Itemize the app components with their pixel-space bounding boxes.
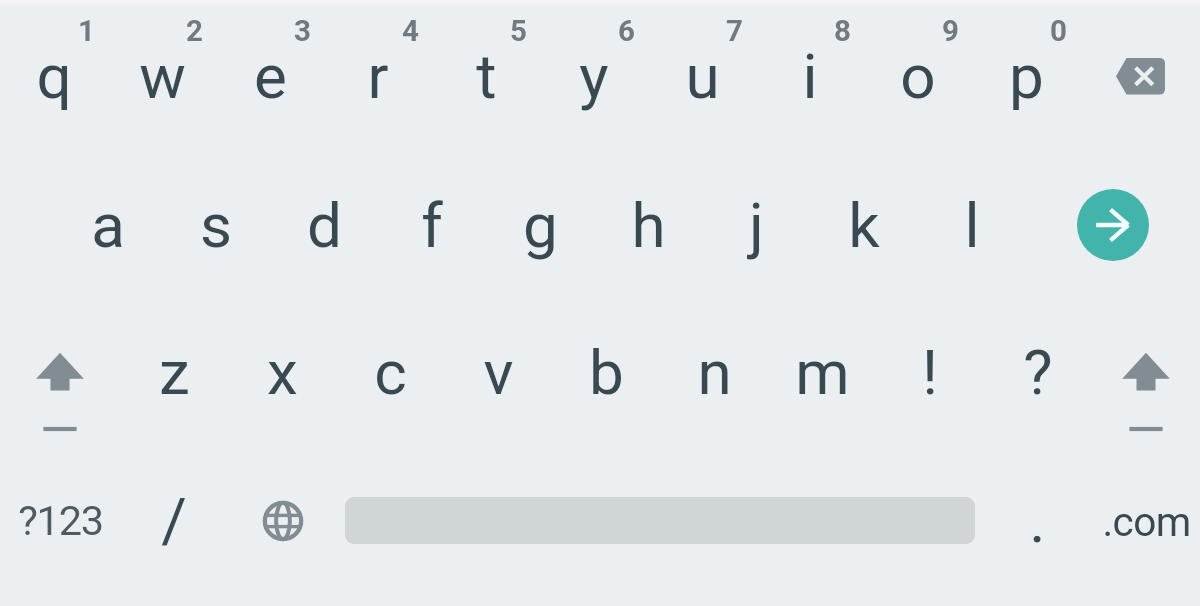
button[interactable]: Shift xyxy=(1092,298,1200,446)
staticText: c xyxy=(374,336,407,409)
staticText: h xyxy=(631,189,666,262)
button[interactable]: d xyxy=(270,151,378,299)
staticText: l xyxy=(964,189,980,262)
button[interactable]: y xyxy=(540,2,648,150)
button[interactable]: q xyxy=(0,2,108,150)
button[interactable]: u xyxy=(648,2,756,150)
button[interactable]: Change language xyxy=(229,467,337,575)
staticText: 9 xyxy=(942,14,959,49)
button[interactable]: ? xyxy=(984,298,1092,446)
staticText: 8 xyxy=(834,14,851,49)
staticText: s xyxy=(200,189,232,262)
button[interactable]: m xyxy=(768,298,876,446)
button[interactable]: ?123 xyxy=(0,446,130,594)
staticText: f xyxy=(421,189,443,262)
staticText: m xyxy=(795,336,850,409)
button[interactable]: x xyxy=(228,298,336,446)
staticText: 1 xyxy=(78,14,95,49)
staticText: z xyxy=(159,336,190,409)
button[interactable]: Enter xyxy=(1077,189,1149,261)
button[interactable]: Backspace xyxy=(1086,28,1195,125)
button[interactable]: e xyxy=(216,2,324,150)
staticText: u xyxy=(685,40,720,113)
staticText: .com xyxy=(1102,498,1191,545)
staticText: b xyxy=(589,336,624,409)
staticText: w xyxy=(139,40,186,113)
staticText: x xyxy=(267,336,298,409)
staticText: . xyxy=(1029,484,1046,557)
staticText: 4 xyxy=(402,14,419,49)
button[interactable]: b xyxy=(552,298,660,446)
button[interactable]: n xyxy=(660,298,768,446)
button[interactable]: a xyxy=(54,151,162,299)
staticText: o xyxy=(900,40,936,113)
button[interactable]: j xyxy=(702,151,810,299)
button[interactable]: g xyxy=(486,151,594,299)
staticText: 0 xyxy=(1050,14,1067,49)
button[interactable]: s xyxy=(162,151,270,299)
staticText: 6 xyxy=(618,14,635,49)
button[interactable]: z xyxy=(120,298,228,446)
button[interactable]: w xyxy=(108,2,216,150)
button[interactable]: k xyxy=(810,151,918,299)
button[interactable]: i xyxy=(756,2,864,150)
button[interactable]: v xyxy=(444,298,552,446)
staticText: i xyxy=(802,40,818,113)
staticText: j xyxy=(749,189,764,262)
staticText: d xyxy=(307,189,342,262)
staticText: 5 xyxy=(510,14,527,49)
button[interactable]: Shift xyxy=(6,298,114,446)
staticText: v xyxy=(483,336,514,409)
staticText: p xyxy=(1009,40,1044,113)
staticText: g xyxy=(523,189,558,262)
button[interactable]: / xyxy=(120,446,228,594)
button[interactable]: ! xyxy=(876,298,984,446)
staticText: e xyxy=(254,40,287,113)
button[interactable]: c xyxy=(336,298,444,446)
button[interactable]: o xyxy=(864,2,972,150)
staticText: 7 xyxy=(726,14,743,49)
button[interactable]: l xyxy=(918,151,1026,299)
staticText: / xyxy=(161,484,187,557)
staticText: q xyxy=(36,40,72,113)
staticText: ? xyxy=(1023,336,1053,409)
staticText: ?123 xyxy=(18,496,103,545)
button[interactable]: .com xyxy=(1076,447,1200,595)
button[interactable]: r xyxy=(324,2,432,150)
staticText: a xyxy=(91,189,125,262)
button[interactable]: h xyxy=(594,151,702,299)
button[interactable]: f xyxy=(378,151,486,299)
button[interactable]: . xyxy=(983,446,1091,594)
button[interactable]: p xyxy=(972,2,1080,150)
staticText: y xyxy=(579,40,609,113)
staticText: t xyxy=(476,40,497,113)
staticText: ! xyxy=(922,336,938,409)
button[interactable]: t xyxy=(432,2,540,150)
staticText: r xyxy=(367,40,389,113)
staticText: n xyxy=(697,336,732,409)
staticText: k xyxy=(848,189,880,262)
staticText: 2 xyxy=(186,14,203,49)
staticText: 3 xyxy=(294,14,311,49)
